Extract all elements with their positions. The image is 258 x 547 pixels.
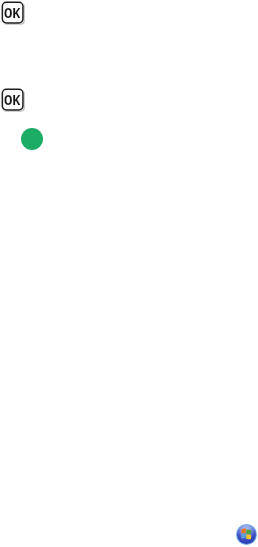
staticText: OK	[4, 90, 21, 109]
button[interactable]: Start	[236, 524, 257, 545]
button[interactable]: Green dot	[21, 128, 43, 150]
button[interactable]: OK	[1, 88, 27, 114]
button[interactable]: OK	[1, 1, 27, 27]
staticText: OK	[4, 3, 21, 22]
